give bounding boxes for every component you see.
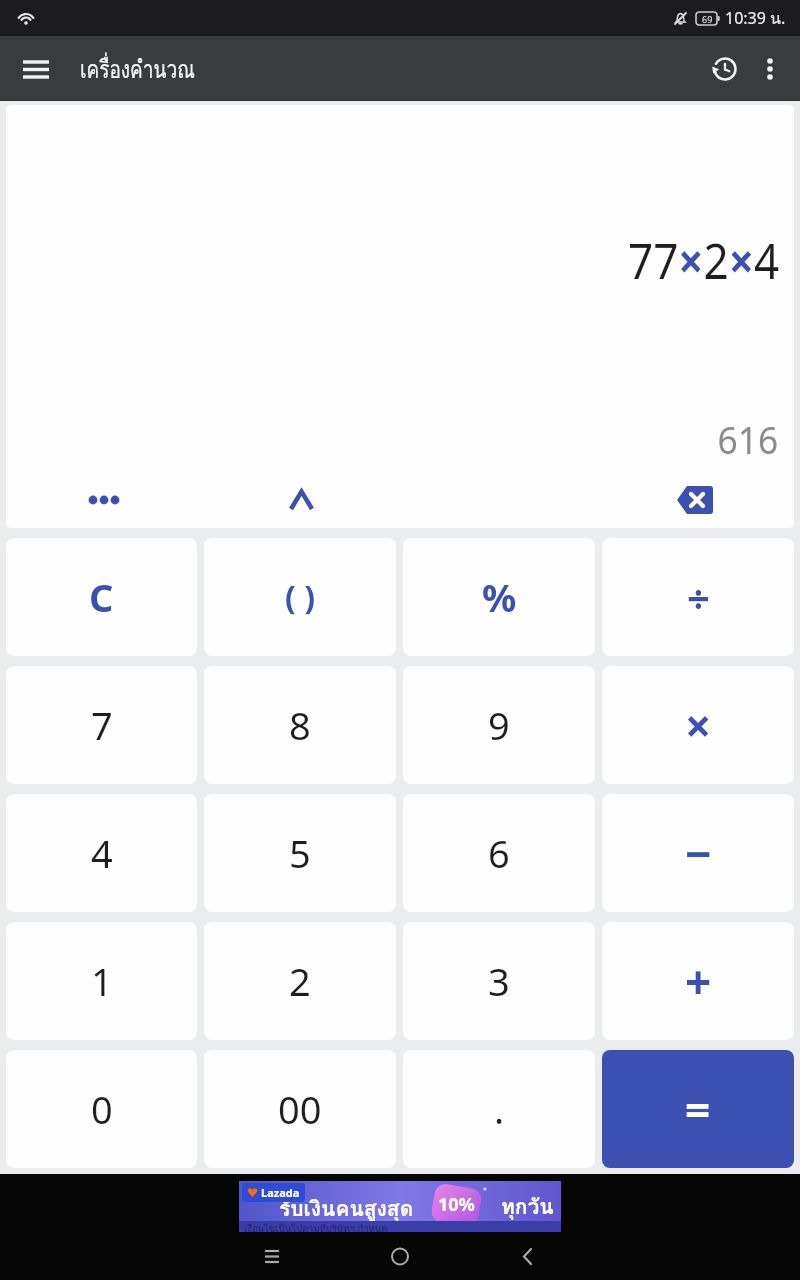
button[interactable]: × [602, 666, 794, 784]
staticText: 616 [718, 413, 779, 465]
staticText: . [494, 1083, 505, 1135]
button[interactable] [261, 472, 341, 528]
staticText: 3 [488, 955, 510, 1007]
button[interactable] [654, 472, 734, 528]
button[interactable]: 1 [6, 922, 197, 1040]
button[interactable]: % [403, 538, 595, 656]
button[interactable]: 2 [204, 922, 396, 1040]
staticText: Lazada [261, 1185, 300, 1200]
button[interactable]: ( ) [204, 538, 396, 656]
button[interactable]: 7 [6, 666, 197, 784]
staticText: C [89, 571, 114, 623]
staticText: % [482, 571, 517, 623]
staticText: 9 [488, 699, 510, 751]
staticText: 10% [438, 1192, 475, 1217]
staticText: × [685, 694, 712, 757]
staticText: − [685, 822, 712, 885]
staticText: 5 [289, 827, 311, 879]
button[interactable]: 00 [204, 1050, 396, 1168]
staticText: 8 [289, 699, 311, 751]
button[interactable] [66, 472, 146, 528]
staticText: ทุกวัน [501, 1190, 554, 1223]
staticText: 69 [702, 13, 713, 25]
button[interactable]: 5 [204, 794, 396, 912]
button[interactable]: + [602, 922, 794, 1040]
staticText: รับเงินคนสูงสุด [279, 1192, 414, 1225]
button[interactable] [240, 1242, 300, 1278]
staticText: 2 [289, 955, 311, 1007]
staticText: 7 [91, 699, 113, 751]
button[interactable]: C [6, 538, 197, 656]
button[interactable]: 6 [403, 794, 595, 912]
staticText: 77×2×4 [628, 227, 780, 294]
button[interactable] [704, 48, 746, 90]
button[interactable]: . [403, 1050, 595, 1168]
button[interactable]: ÷ [602, 538, 794, 656]
button[interactable] [750, 49, 790, 89]
staticText: + [685, 950, 712, 1013]
staticText: เครื่องคำนวณ [80, 49, 195, 89]
staticText: 1 [91, 955, 113, 1007]
staticText: 10:39 น. [725, 6, 786, 31]
button[interactable]: รับเงินคนสูงสุด [239, 1181, 561, 1232]
button[interactable]: 9 [403, 666, 595, 784]
button[interactable]: 4 [6, 794, 197, 912]
staticText: 00 [278, 1083, 322, 1135]
staticText: 4 [91, 827, 113, 879]
button[interactable]: − [602, 794, 794, 912]
staticText: ( ) [285, 575, 316, 619]
button[interactable]: 8 [204, 666, 396, 784]
button[interactable] [498, 1242, 558, 1278]
staticText: 0 [91, 1083, 113, 1135]
staticText: ÷ [687, 570, 710, 624]
button[interactable] [14, 47, 58, 91]
staticText: = [685, 1079, 711, 1139]
button[interactable] [370, 1242, 430, 1278]
staticText: 6 [488, 827, 510, 879]
button[interactable]: 0 [6, 1050, 197, 1168]
button[interactable]: 3 [403, 922, 595, 1040]
staticText: เงื่อนไขเป็นไปตามที่บริษัทฯ กำหนด [244, 1221, 388, 1232]
button[interactable]: = [602, 1050, 794, 1168]
